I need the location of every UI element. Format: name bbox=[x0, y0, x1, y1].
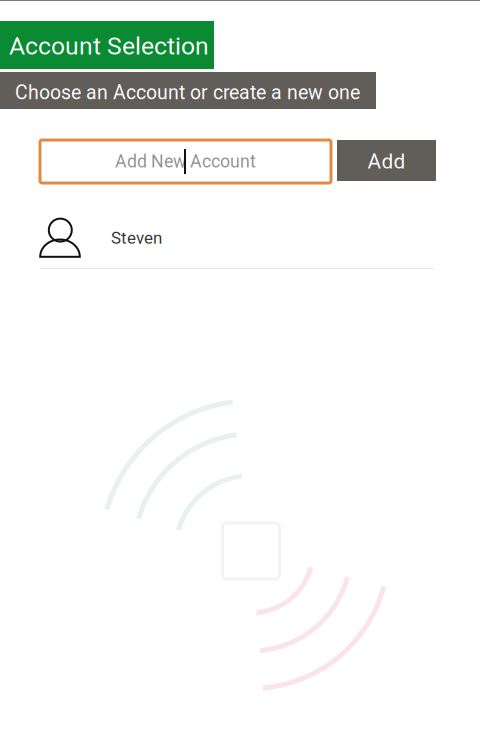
staticText: Choose an Account or create a new one bbox=[15, 81, 360, 104]
button[interactable]: Steven bbox=[0, 200, 480, 269]
staticText: Add bbox=[367, 149, 405, 174]
staticText: Add New Account bbox=[115, 151, 256, 172]
staticText: Steven bbox=[111, 228, 162, 248]
button[interactable]: Add New Account bbox=[40, 140, 331, 183]
button[interactable]: Add bbox=[337, 140, 436, 181]
staticText: Account Selection bbox=[9, 31, 209, 60]
